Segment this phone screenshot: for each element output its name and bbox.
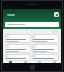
button[interactable]: Tab 1 [7, 61, 13, 63]
button[interactable] [5, 12, 17, 18]
button[interactable]: Tab 2 [22, 61, 28, 63]
button[interactable] [5, 54, 31, 61]
button[interactable]: Account [54, 12, 59, 17]
button[interactable]: Tab 3 [36, 61, 42, 63]
button[interactable] [32, 44, 59, 53]
button[interactable] [32, 54, 59, 61]
button[interactable]: Search [5, 22, 59, 27]
button[interactable]: Home [30, 65, 35, 70]
button[interactable] [32, 34, 59, 43]
button[interactable] [5, 34, 31, 43]
button[interactable]: Tab 4 [51, 61, 57, 63]
button[interactable] [5, 44, 31, 53]
